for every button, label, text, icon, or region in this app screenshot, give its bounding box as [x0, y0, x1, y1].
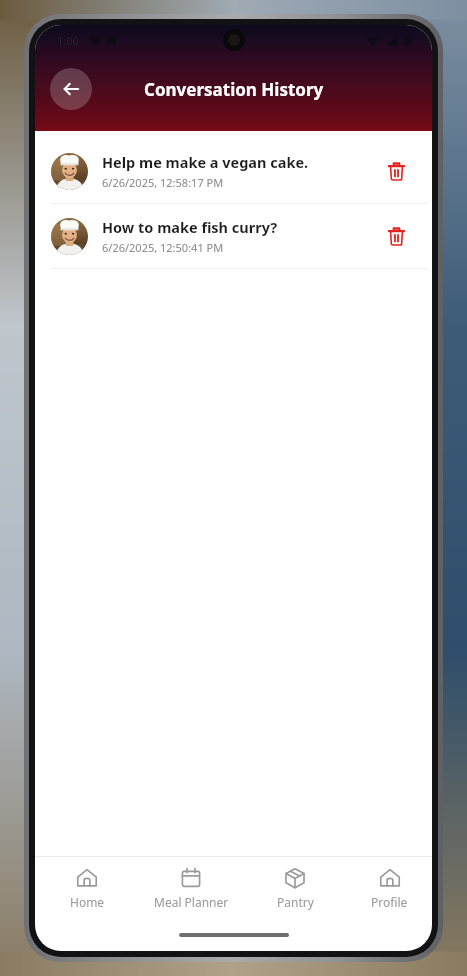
- button[interactable]: Meal Planner: [139, 857, 243, 919]
- button[interactable]: Pantry: [243, 857, 347, 919]
- staticText: Help me make a vegan cake.: [102, 152, 309, 172]
- staticText: Meal Planner: [154, 894, 229, 910]
- button[interactable]: Delete conversation: [376, 151, 416, 191]
- staticText: 6/26/2025, 12:50:41 PM: [102, 240, 224, 255]
- button[interactable]: Home: [35, 857, 139, 919]
- button[interactable]: How to make fish curry?: [35, 204, 432, 268]
- staticText: 6/26/2025, 12:58:17 PM: [102, 175, 224, 190]
- button[interactable]: Profile: [347, 857, 432, 919]
- staticText: 1:00: [57, 33, 79, 48]
- button[interactable]: Delete conversation: [376, 216, 416, 256]
- staticText: Pantry: [277, 894, 314, 910]
- staticText: Profile: [371, 894, 408, 910]
- staticText: How to make fish curry?: [102, 217, 278, 237]
- staticText: Conversation History: [144, 78, 324, 101]
- button[interactable]: Help me make a vegan cake.: [35, 139, 432, 203]
- button[interactable]: Back: [50, 68, 92, 110]
- staticText: Home: [70, 894, 105, 910]
